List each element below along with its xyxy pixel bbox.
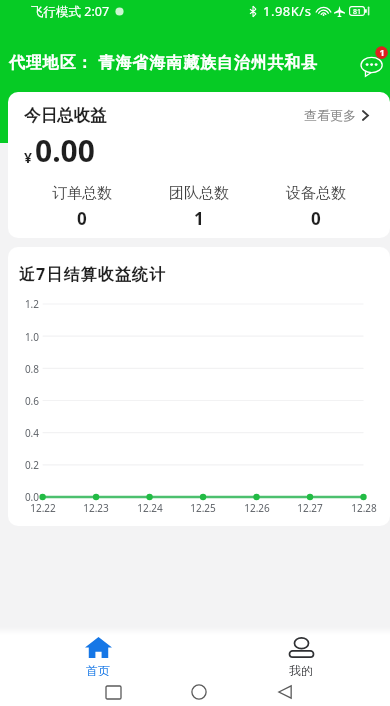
staticText: 81: [346, 7, 368, 17]
button[interactable]: 设备总数: [257, 184, 374, 230]
staticText: 0.0: [9, 490, 39, 504]
staticText: 1.98K/s: [263, 2, 312, 20]
staticText: 12.22: [23, 501, 63, 515]
staticText: 今日总收益: [24, 105, 107, 126]
staticText: 1: [378, 46, 386, 58]
staticText: 代理地区： 青海省海南藏族自治州共和县: [9, 51, 319, 73]
staticText: 近7日结算收益统计: [19, 263, 167, 285]
button[interactable]: 今日总收益: [8, 92, 390, 238]
staticText: 订单总数: [52, 184, 112, 203]
staticText: 0.8: [9, 362, 39, 376]
button[interactable]: 查看更多: [304, 107, 369, 123]
staticText: 我的: [289, 663, 313, 678]
button[interactable]: 我的: [281, 637, 321, 678]
staticText: 1.0: [9, 330, 39, 344]
staticText: 1.2: [9, 297, 39, 311]
staticText: 0.00: [35, 130, 95, 171]
staticText: 0: [311, 207, 321, 230]
button[interactable]: 订单总数: [24, 184, 140, 230]
staticText: 0: [77, 207, 87, 230]
button[interactable]: Messages: [352, 44, 390, 82]
button[interactable]: Back: [265, 676, 305, 706]
staticText: 12.24: [130, 501, 170, 515]
staticText: 查看更多: [304, 107, 356, 123]
staticText: 12.26: [237, 501, 277, 515]
staticText: 12.27: [290, 501, 330, 515]
staticText: 12.25: [183, 501, 223, 515]
staticText: 飞行模式 2:07: [31, 3, 110, 20]
staticText: 12.28: [344, 501, 384, 515]
staticText: 首页: [86, 663, 110, 678]
button[interactable]: 团队总数: [140, 184, 257, 230]
staticText: 1: [194, 207, 204, 230]
staticText: 设备总数: [286, 184, 346, 203]
button[interactable]: 首页: [78, 637, 118, 678]
staticText: ¥: [24, 148, 33, 167]
staticText: 0.2: [9, 458, 39, 472]
staticText: 团队总数: [169, 184, 229, 203]
staticText: 0.6: [9, 394, 39, 408]
button[interactable]: Recents: [93, 676, 133, 706]
staticText: 0.4: [9, 426, 39, 440]
staticText: 12.23: [76, 501, 116, 515]
button[interactable]: Home: [179, 676, 219, 706]
